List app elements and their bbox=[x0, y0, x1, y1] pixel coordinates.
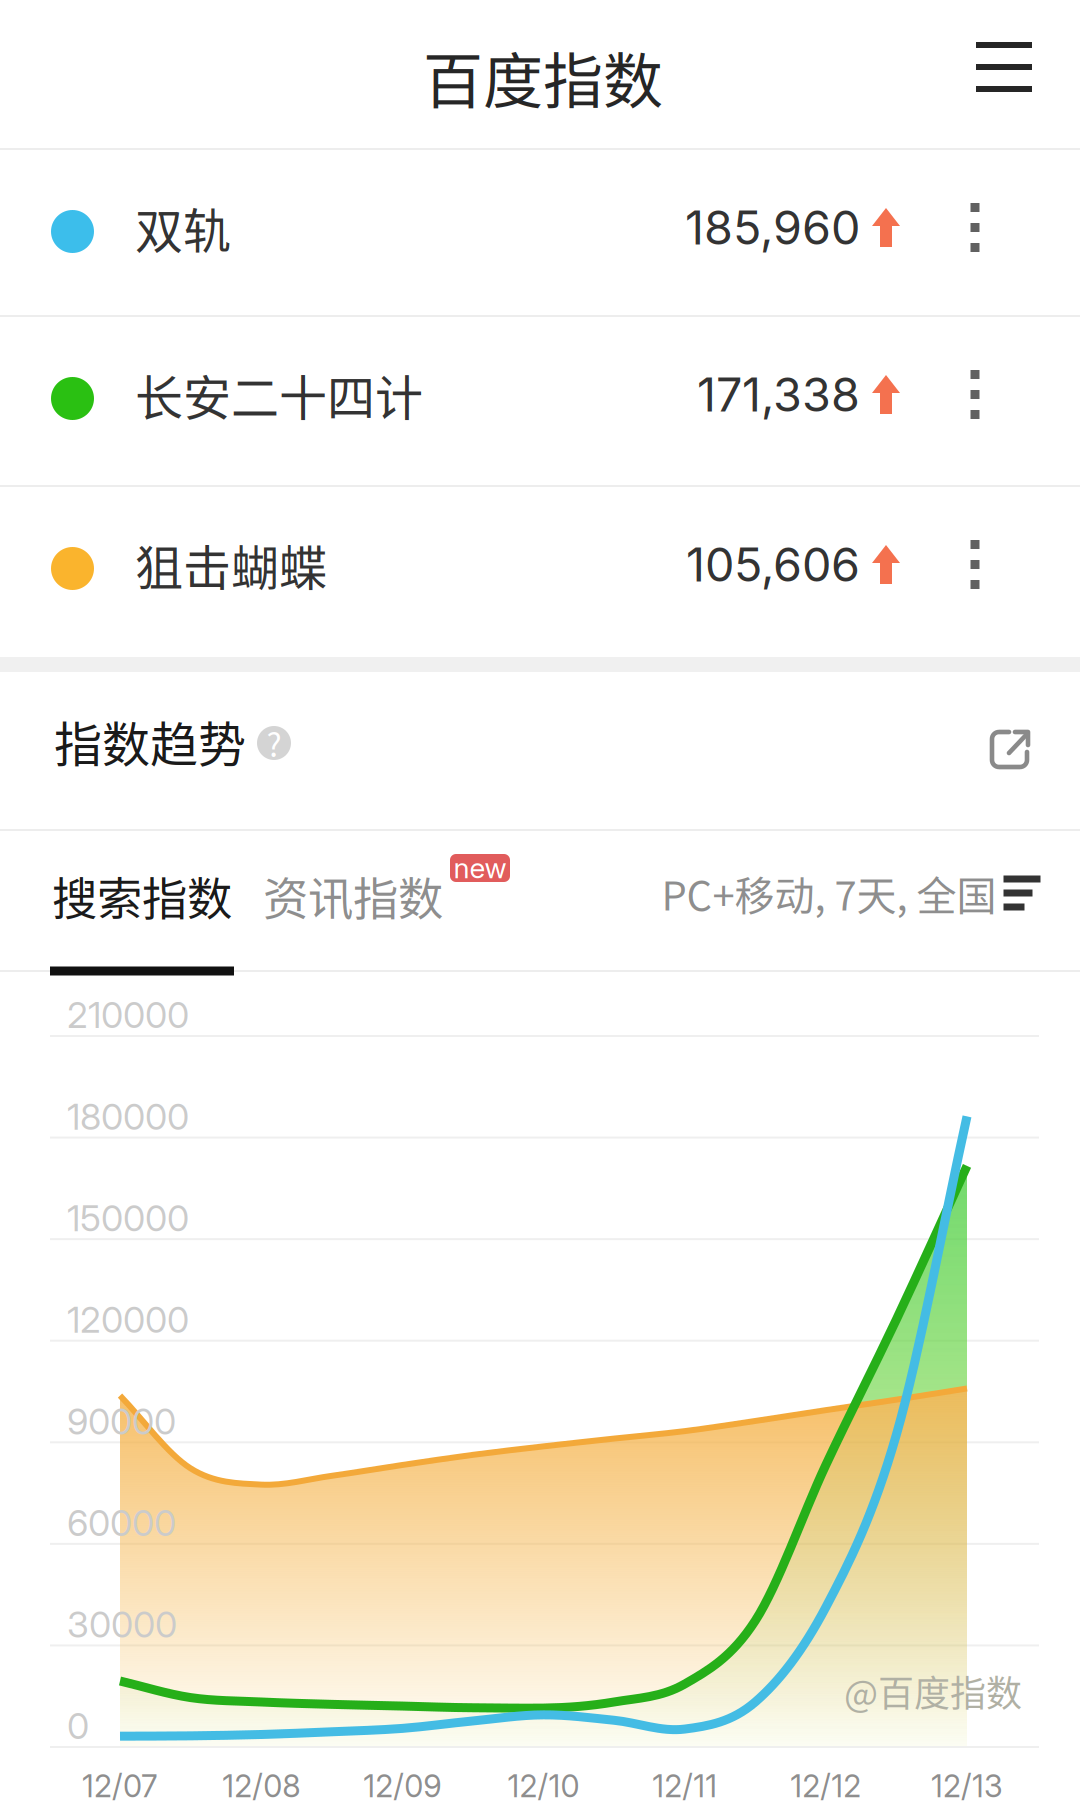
button[interactable]: 搜索指数 bbox=[42, 836, 242, 956]
staticText: @百度指数 bbox=[844, 1665, 1022, 1717]
staticText: 171,338 bbox=[697, 366, 860, 423]
staticText: 185,960 bbox=[685, 199, 860, 256]
staticText: 210000 bbox=[67, 993, 189, 1037]
button[interactable]: PC+移动, 7天, 全国 bbox=[661, 848, 1040, 938]
staticText: 双轨 bbox=[135, 193, 231, 262]
staticText: 0 bbox=[67, 1704, 89, 1748]
staticText: 12/07 bbox=[82, 1767, 158, 1804]
staticText: 搜索指数 bbox=[52, 863, 232, 929]
staticText: 12/10 bbox=[507, 1767, 579, 1804]
staticText: 150000 bbox=[67, 1196, 189, 1240]
staticText: 12/13 bbox=[931, 1767, 1003, 1804]
staticText: 长安二十四计 bbox=[135, 360, 423, 429]
staticText: 12/11 bbox=[652, 1767, 717, 1804]
staticText: 60000 bbox=[67, 1501, 176, 1545]
staticText: ? bbox=[266, 720, 281, 766]
staticText: 百度指数 bbox=[423, 34, 663, 120]
staticText: 105,606 bbox=[686, 536, 860, 593]
staticText: 120000 bbox=[67, 1298, 189, 1341]
staticText: new bbox=[453, 851, 506, 885]
staticText: 狙击蝴蝶 bbox=[135, 530, 327, 599]
button[interactable]: 长安二十四计 bbox=[0, 316, 1080, 483]
staticText: 资讯指数 bbox=[263, 863, 443, 929]
button[interactable]: 狙击蝴蝶 bbox=[0, 486, 1080, 653]
staticText: 180000 bbox=[67, 1095, 189, 1138]
staticText: 12/08 bbox=[222, 1767, 300, 1804]
button[interactable]: 资讯指数 bbox=[253, 836, 453, 956]
button[interactable]: Open full screen chart bbox=[988, 728, 1032, 772]
staticText: 90000 bbox=[67, 1399, 176, 1443]
button[interactable]: Menu bbox=[950, 13, 1058, 121]
staticText: 12/12 bbox=[790, 1767, 861, 1804]
staticText: PC+移动, 7天, 全国 bbox=[661, 864, 996, 922]
staticText: 30000 bbox=[67, 1603, 177, 1646]
staticText: 指数趋势 bbox=[54, 706, 246, 776]
staticText: 12/09 bbox=[363, 1767, 441, 1804]
button[interactable]: 双轨 bbox=[0, 149, 1080, 316]
